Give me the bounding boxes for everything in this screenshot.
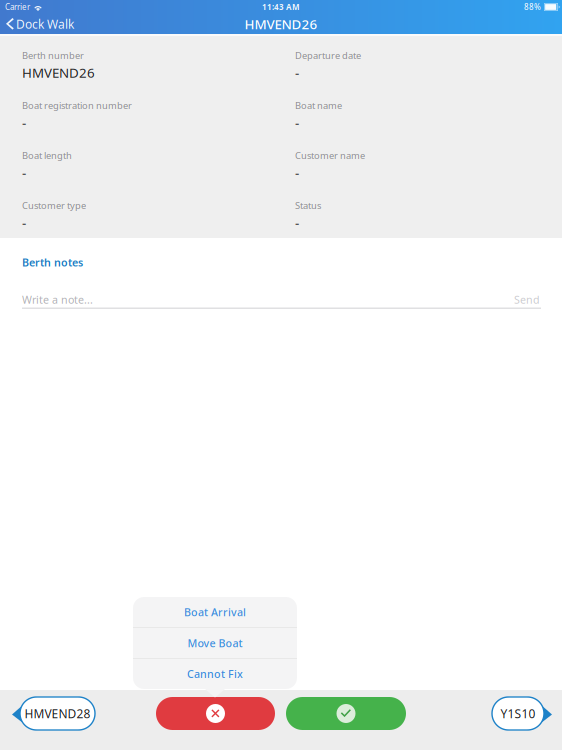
staticText: Customer name xyxy=(295,149,365,162)
staticText: Dock Walk xyxy=(16,16,74,32)
button[interactable]: Cannot Fix xyxy=(133,659,297,689)
staticText: 11:43 AM xyxy=(262,2,300,12)
staticText: - xyxy=(22,214,26,231)
button[interactable]: Boat Arrival xyxy=(133,597,297,627)
staticText: Berth number xyxy=(22,49,84,62)
staticText: Y1S10 xyxy=(500,705,535,721)
staticText: Berth notes xyxy=(22,255,83,269)
staticText: Move Boat xyxy=(187,636,242,650)
button[interactable]: Reject xyxy=(156,697,275,730)
staticText: - xyxy=(295,214,299,231)
staticText: Boat length xyxy=(22,149,72,162)
button[interactable]: Y1S10 xyxy=(492,697,552,730)
staticText: - xyxy=(295,164,299,181)
staticText: Cannot Fix xyxy=(187,667,243,681)
staticText: Write a note... xyxy=(22,292,93,307)
staticText: Send xyxy=(514,292,540,307)
staticText: Boat Arrival xyxy=(184,605,246,619)
button[interactable]: HMVEND28 xyxy=(12,697,95,730)
staticText: Boat registration number xyxy=(22,99,132,112)
button[interactable]: Dock Walk xyxy=(0,14,84,34)
button[interactable]: Accept xyxy=(286,697,406,730)
staticText: - xyxy=(22,114,26,131)
staticText: - xyxy=(22,164,26,181)
button[interactable]: Send xyxy=(514,292,540,307)
staticText: HMVEND26 xyxy=(22,64,95,81)
staticText: - xyxy=(295,64,299,81)
staticText: HMVEND26 xyxy=(244,15,317,33)
staticText: HMVEND28 xyxy=(24,705,90,721)
staticText: 88% xyxy=(524,2,541,12)
staticText: - xyxy=(295,114,299,131)
staticText: Departure date xyxy=(295,49,361,62)
staticText: Customer type xyxy=(22,199,86,212)
staticText: Carrier xyxy=(5,2,30,12)
button[interactable]: Move Boat xyxy=(133,628,297,658)
staticText: Boat name xyxy=(295,99,342,112)
staticText: Status xyxy=(295,199,321,212)
